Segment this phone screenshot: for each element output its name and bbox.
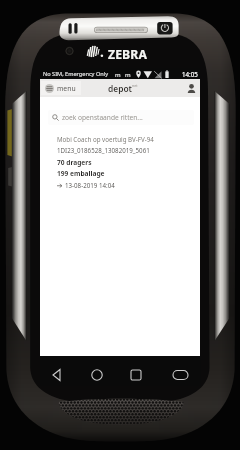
staticText: 14:05 (182, 70, 198, 78)
staticText: m (125, 71, 131, 79)
staticText: 199 emballage (57, 169, 105, 178)
staticText: 13-08-2019 14:04 (65, 181, 115, 189)
staticText: net (132, 83, 138, 88)
staticText: ZEBRA (108, 46, 147, 63)
staticText: 1DI23_0186528_13082019_5061 (57, 146, 150, 154)
staticText: No SIM, Emergency Only (43, 70, 108, 78)
staticText: 70 dragers (57, 158, 92, 167)
button[interactable]: zoek openstaande ritten... (48, 110, 194, 125)
staticText: m (115, 71, 121, 79)
staticText: Mobi Coach op voertuig BV-FV-94 (57, 135, 154, 143)
staticText: depot (108, 83, 132, 94)
button[interactable]: Account (183, 79, 200, 97)
button[interactable]: Mobi Coach op voertuig BV-FV-94 (40, 132, 200, 194)
button[interactable]: menu (41, 81, 81, 95)
staticText: menu (57, 84, 76, 93)
staticText: zoek openstaande ritten... (62, 113, 143, 122)
